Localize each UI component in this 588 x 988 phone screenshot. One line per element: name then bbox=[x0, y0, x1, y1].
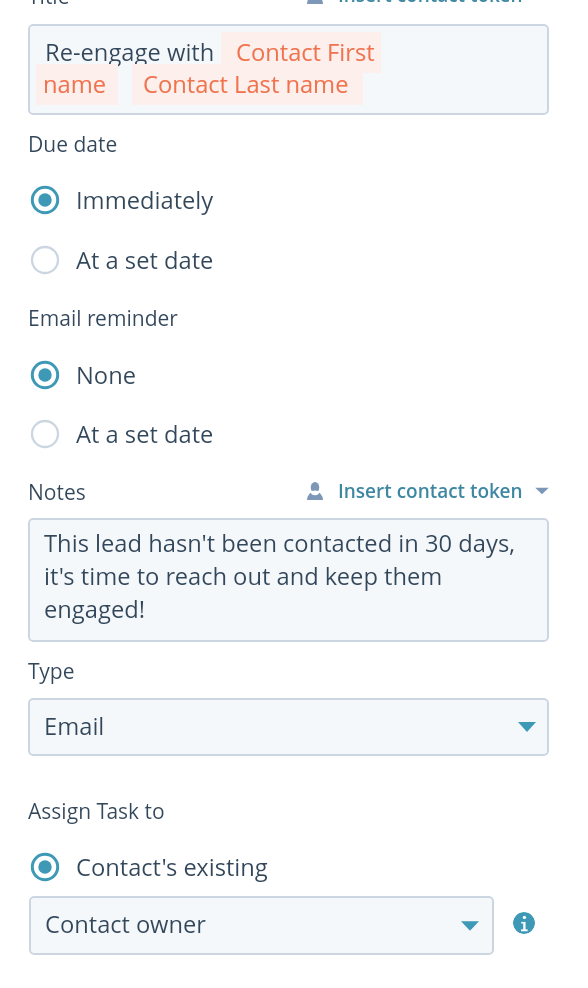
staticText: Notes bbox=[28, 478, 86, 507]
staticText: Due date bbox=[28, 130, 118, 159]
staticText: Contact owner bbox=[45, 908, 206, 940]
staticText: Re-engage with bbox=[45, 36, 215, 68]
staticText: name bbox=[43, 68, 107, 100]
button[interactable]: Email bbox=[28, 698, 549, 756]
button[interactable]: Immediately bbox=[28, 183, 214, 217]
staticText: Contact Last name bbox=[143, 68, 349, 100]
staticText: Insert contact token bbox=[338, 0, 523, 8]
button[interactable]: Insert contact token bbox=[307, 0, 557, 9]
button[interactable]: At a set date bbox=[28, 243, 214, 277]
staticText: Email bbox=[44, 710, 105, 742]
button[interactable] bbox=[28, 24, 549, 115]
staticText: Contact's existing bbox=[76, 851, 268, 883]
staticText: None bbox=[76, 359, 136, 391]
staticText: Type bbox=[28, 657, 75, 686]
button[interactable]: Insert contact token bbox=[307, 477, 557, 505]
staticText: Contact First bbox=[236, 36, 375, 68]
staticText: At a set date bbox=[76, 244, 214, 276]
button[interactable]: Contact owner bbox=[29, 896, 494, 955]
staticText: Assign Task to bbox=[28, 797, 165, 826]
button[interactable]: More information bbox=[513, 912, 535, 934]
staticText: Immediately bbox=[76, 184, 214, 216]
staticText: Email reminder bbox=[28, 304, 178, 333]
staticText: Title bbox=[28, 0, 70, 11]
button[interactable]: None bbox=[28, 358, 136, 392]
button[interactable]: This lead hasn't been contacted in 30 da… bbox=[28, 518, 549, 642]
button[interactable]: At a set date bbox=[28, 417, 214, 451]
staticText: Insert contact token bbox=[338, 478, 523, 504]
staticText: At a set date bbox=[76, 418, 214, 450]
button[interactable]: Contact's existing bbox=[28, 850, 268, 884]
staticText: This lead hasn't been contacted in 30 da… bbox=[44, 526, 534, 625]
